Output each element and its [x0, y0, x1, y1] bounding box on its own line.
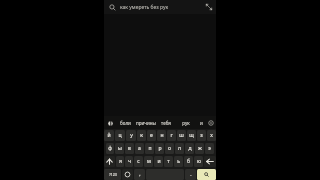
- staticText: ч: [128, 158, 131, 165]
- button[interactable]: ф: [106, 143, 114, 154]
- button[interactable]: в: [125, 143, 134, 154]
- staticText: щ: [189, 132, 194, 139]
- button[interactable]: и: [154, 156, 163, 167]
- button[interactable]: Emoji: [122, 169, 133, 180]
- button[interactable]: рук: [176, 116, 196, 129]
- staticText: .: [190, 171, 192, 178]
- staticText: в: [128, 145, 131, 152]
- button[interactable]: ч: [125, 156, 133, 167]
- staticText: з: [200, 132, 203, 139]
- button[interactable]: к: [137, 130, 146, 141]
- staticText: тебя: [161, 120, 171, 126]
- staticText: д: [188, 145, 192, 152]
- staticText: й: [107, 132, 111, 139]
- staticText: г: [170, 132, 173, 139]
- button[interactable]: ?123: [104, 169, 121, 180]
- staticText: о: [168, 145, 171, 152]
- button[interactable]: з: [197, 130, 206, 141]
- button[interactable]: причины: [136, 116, 156, 129]
- staticText: э: [208, 145, 211, 152]
- button[interactable]: г: [167, 130, 176, 141]
- button[interactable]: о: [165, 143, 174, 154]
- staticText: л: [178, 145, 181, 152]
- button[interactable]: п: [145, 143, 154, 154]
- staticText: ы: [118, 145, 122, 152]
- staticText: м: [147, 158, 151, 165]
- staticText: и: [157, 158, 161, 165]
- staticText: к: [140, 132, 143, 139]
- staticText: и: [200, 120, 203, 126]
- button[interactable]: тебя: [156, 116, 176, 129]
- staticText: ь: [177, 158, 180, 165]
- button[interactable]: б: [184, 156, 193, 167]
- staticText: н: [160, 132, 164, 139]
- staticText: е: [150, 132, 153, 139]
- staticText: я: [119, 158, 122, 165]
- staticText: у: [130, 132, 133, 139]
- staticText: р: [158, 145, 162, 152]
- staticText: ?123: [109, 172, 117, 177]
- staticText: х: [210, 132, 213, 139]
- button[interactable]: я: [116, 156, 124, 167]
- button[interactable]: д: [185, 143, 194, 154]
- button[interactable]: Shift: [104, 156, 115, 167]
- button[interactable]: а: [135, 143, 144, 154]
- button[interactable]: у: [126, 130, 136, 141]
- staticText: ю: [197, 158, 201, 165]
- button[interactable]: ,: [134, 169, 145, 180]
- staticText: т: [167, 158, 170, 165]
- button[interactable]: т: [164, 156, 173, 167]
- button[interactable]: й: [104, 130, 114, 141]
- button[interactable]: ж: [195, 143, 204, 154]
- button[interactable]: ю: [194, 156, 203, 167]
- button[interactable]: ц: [115, 130, 125, 141]
- staticText: ж: [198, 145, 202, 152]
- button[interactable]: Search: [108, 3, 117, 12]
- button[interactable]: с: [134, 156, 143, 167]
- button[interactable]: боли: [115, 116, 136, 129]
- button[interactable]: Backspace: [204, 156, 216, 167]
- button[interactable]: щ: [187, 130, 196, 141]
- staticText: причины: [136, 120, 156, 126]
- staticText: а: [138, 145, 141, 152]
- button[interactable]: Search: [197, 169, 216, 180]
- button[interactable]: е: [147, 130, 156, 141]
- button[interactable]: ш: [177, 130, 186, 141]
- button[interactable]: х: [207, 130, 216, 141]
- button[interactable]: р: [155, 143, 164, 154]
- staticText: ,: [139, 171, 141, 178]
- staticText: ц: [118, 132, 122, 139]
- staticText: ф: [108, 145, 112, 152]
- staticText: рук: [182, 120, 190, 126]
- staticText: с: [137, 158, 140, 165]
- button[interactable]: и: [196, 116, 206, 129]
- button[interactable]: Keyboard settings: [206, 118, 215, 127]
- button[interactable]: Keyboard menu: [106, 119, 114, 127]
- staticText: п: [148, 145, 152, 152]
- button[interactable]: л: [175, 143, 184, 154]
- button[interactable]: э: [205, 143, 214, 154]
- staticText: боли: [120, 120, 131, 126]
- button[interactable]: н: [157, 130, 166, 141]
- staticText: б: [187, 158, 190, 165]
- button[interactable]: ь: [174, 156, 183, 167]
- button[interactable]: .: [185, 169, 196, 180]
- button[interactable]: Collapse: [204, 2, 214, 12]
- button[interactable]: Search: [104, 0, 216, 14]
- button[interactable]: м: [144, 156, 153, 167]
- staticText: ш: [179, 132, 184, 139]
- staticText: как умереть без рук: [120, 4, 204, 11]
- button[interactable]: ы: [115, 143, 124, 154]
